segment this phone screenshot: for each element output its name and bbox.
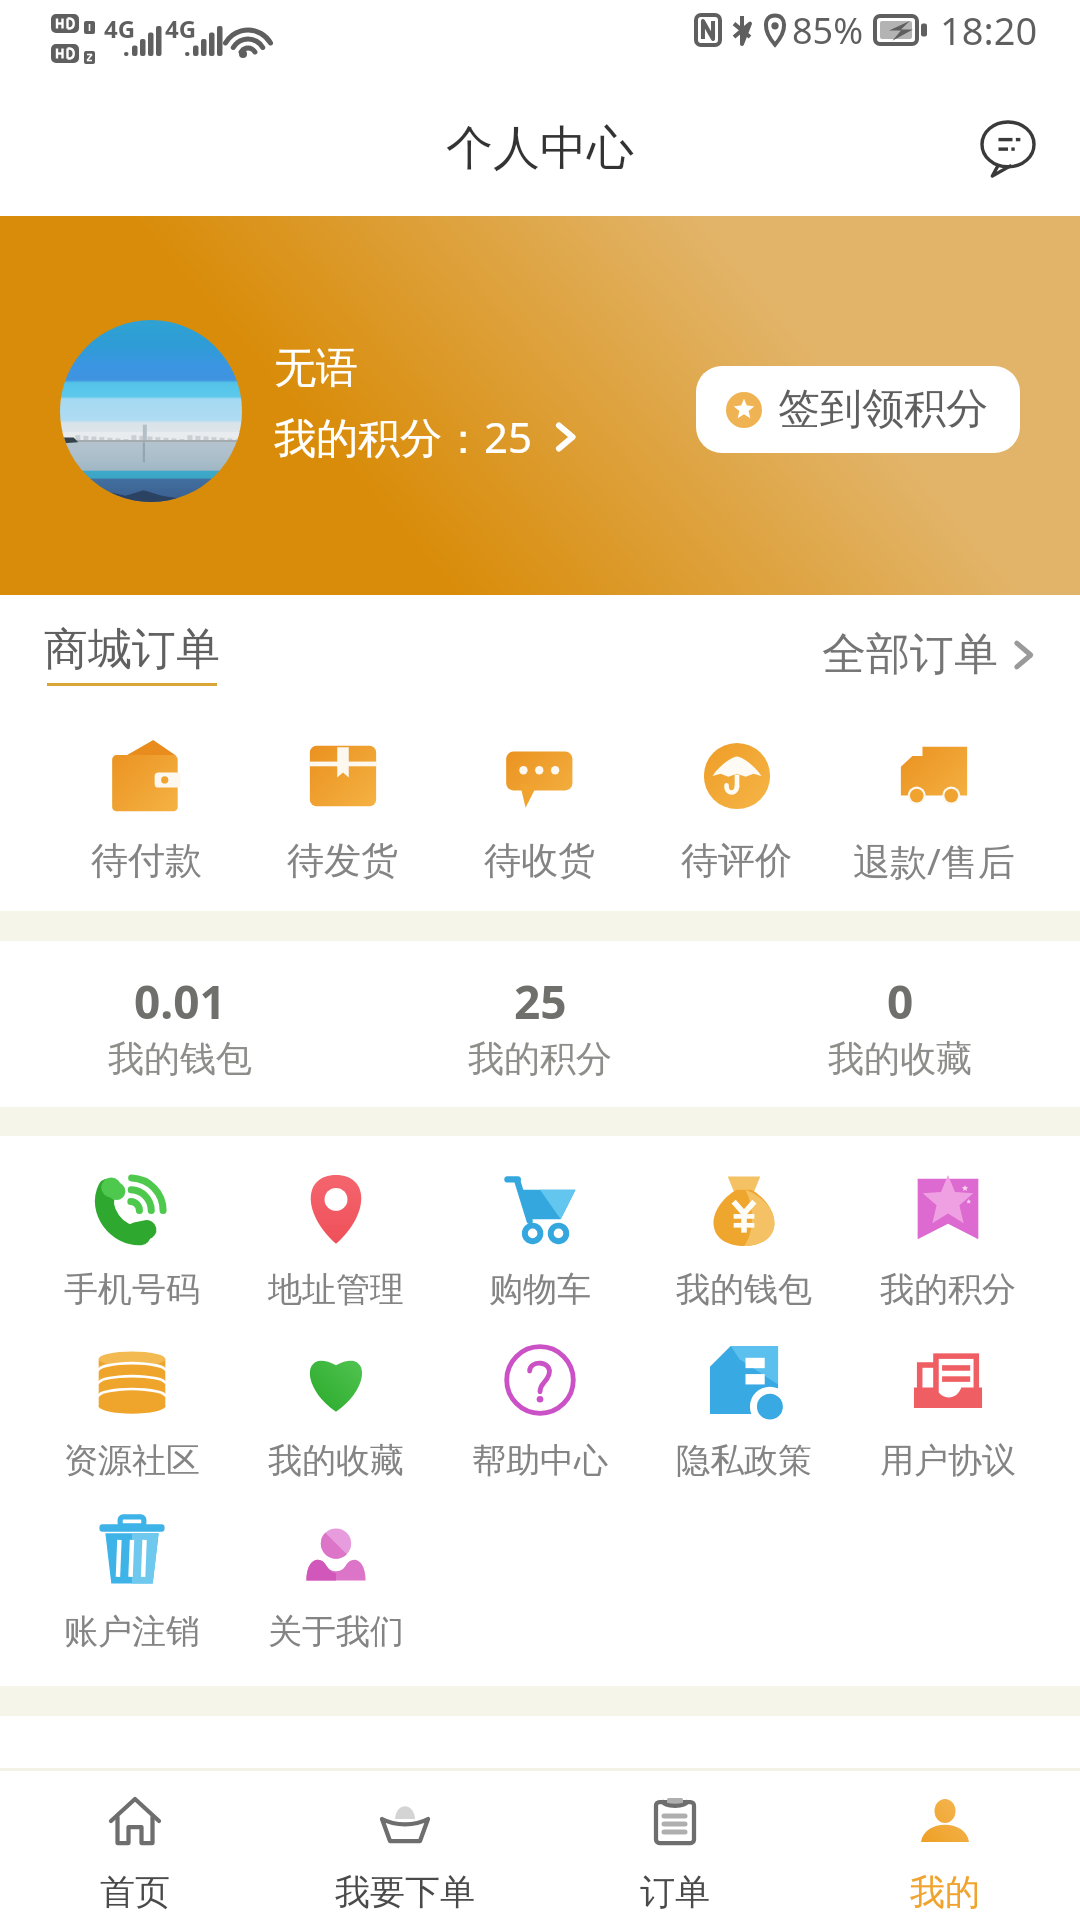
staticText: 资源社区	[64, 1439, 200, 1482]
staticText: 关于我们	[268, 1610, 404, 1653]
staticText: 用户协议	[880, 1439, 1016, 1482]
staticText: 我的积分	[468, 1036, 612, 1081]
staticText: 待付款	[91, 837, 202, 884]
button[interactable]: 我的收藏	[234, 1343, 438, 1514]
staticText: 我的积分：25	[274, 408, 533, 465]
button[interactable]: 签到领积分	[696, 366, 1020, 453]
button[interactable]: 首页	[0, 1771, 270, 1920]
staticText: 4G	[104, 12, 136, 45]
button[interactable]: 待评价	[638, 734, 835, 890]
button[interactable]: 待发货	[244, 734, 441, 890]
button[interactable]: 我的积分	[846, 1172, 1050, 1343]
staticText: 签到领积分	[778, 383, 988, 436]
staticText: 我的收藏	[828, 1036, 972, 1081]
button[interactable]: 隐私政策	[642, 1343, 846, 1514]
staticText: 无语	[274, 342, 358, 395]
staticText: 我的钱包	[676, 1268, 812, 1311]
button[interactable]: 账户注销	[30, 1514, 234, 1685]
button[interactable]: 0	[720, 941, 1080, 1107]
staticText: 25	[514, 970, 567, 1033]
staticText: 18:20	[940, 4, 1038, 56]
button[interactable]: 我的钱包	[642, 1172, 846, 1343]
staticText: 退款/售后	[853, 835, 1015, 886]
staticText: 我要下单	[335, 1870, 475, 1914]
button[interactable]: Messages	[960, 100, 1056, 196]
staticText: 85%	[792, 6, 864, 55]
button[interactable]: 0.01	[0, 941, 360, 1107]
staticText: 我的钱包	[108, 1036, 252, 1081]
button[interactable]: 退款/售后	[835, 732, 1032, 892]
button[interactable]: 订单	[540, 1771, 810, 1920]
staticText: 4G	[165, 12, 197, 45]
button[interactable]: Avatar	[60, 320, 242, 502]
button[interactable]: 购物车	[438, 1172, 642, 1343]
staticText: 0.01	[134, 970, 226, 1033]
staticText: 全部订单	[822, 627, 998, 682]
staticText: 我的	[910, 1870, 980, 1914]
staticText: 个人中心	[446, 119, 634, 178]
staticText: 购物车	[489, 1268, 591, 1311]
button[interactable]: 25	[360, 941, 720, 1107]
button[interactable]: 待收货	[441, 734, 638, 890]
button[interactable]: 全部订单	[818, 617, 1040, 692]
staticText: 手机号码	[64, 1268, 200, 1311]
button[interactable]: 资源社区	[30, 1343, 234, 1514]
staticText: 我的收藏	[268, 1439, 404, 1482]
staticText: 0	[887, 970, 914, 1033]
staticText: 我的积分	[880, 1268, 1016, 1311]
button[interactable]: 我要下单	[270, 1771, 540, 1920]
staticText: 账户注销	[64, 1610, 200, 1653]
staticText: 首页	[100, 1870, 170, 1914]
staticText: 待发货	[287, 837, 398, 884]
button[interactable]: 待付款	[48, 734, 244, 890]
button[interactable]: 我的	[810, 1771, 1080, 1920]
staticText: 隐私政策	[676, 1439, 812, 1482]
button[interactable]: 帮助中心	[438, 1343, 642, 1514]
staticText: 待评价	[681, 837, 792, 884]
staticText: 地址管理	[268, 1268, 404, 1311]
staticText: 商城订单	[44, 622, 220, 677]
button[interactable]: 手机号码	[30, 1172, 234, 1343]
button[interactable]: 用户协议	[846, 1343, 1050, 1514]
staticText: 订单	[640, 1870, 710, 1914]
staticText: 待收货	[484, 837, 595, 884]
button[interactable]: 关于我们	[234, 1514, 438, 1685]
button[interactable]: 地址管理	[234, 1172, 438, 1343]
staticText: 帮助中心	[472, 1439, 608, 1482]
